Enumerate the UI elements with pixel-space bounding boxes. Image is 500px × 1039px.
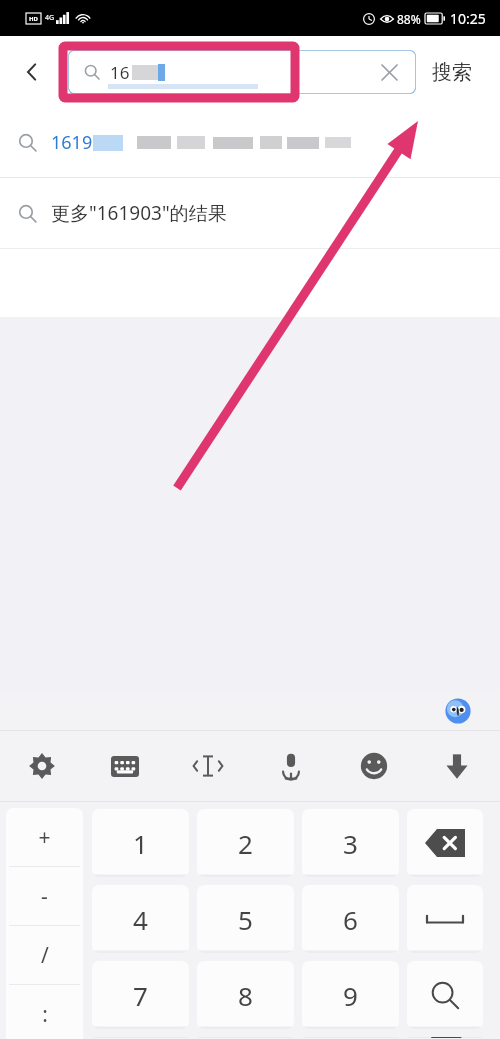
button[interactable]: 9 bbox=[302, 961, 399, 1029]
button[interactable]: 5 bbox=[197, 885, 294, 953]
staticText: + bbox=[38, 823, 51, 852]
staticText: 2 bbox=[238, 826, 253, 861]
staticText: 16 bbox=[110, 61, 130, 84]
button[interactable]: 2 bbox=[197, 809, 294, 877]
staticText: 更多"161903"的结果 bbox=[51, 200, 227, 226]
button[interactable]: 搜索 bbox=[416, 47, 488, 97]
staticText: 7 bbox=[133, 978, 148, 1013]
button[interactable]: 键盘切换 bbox=[83, 731, 166, 801]
staticText: 4G bbox=[45, 13, 55, 23]
staticText: - bbox=[41, 882, 48, 911]
button[interactable]: 4 bbox=[92, 885, 189, 953]
button[interactable]: 返回 bbox=[14, 54, 50, 90]
button[interactable]: 空格 bbox=[407, 885, 483, 953]
staticText: 3 bbox=[343, 826, 358, 861]
button[interactable]: 收起键盘 bbox=[415, 731, 498, 801]
button[interactable]: 6 bbox=[302, 885, 399, 953]
button[interactable]: : bbox=[6, 985, 83, 1039]
button[interactable]: 输入法 bbox=[444, 697, 472, 725]
staticText: HD bbox=[29, 15, 38, 23]
staticText: / bbox=[41, 941, 49, 970]
button[interactable]: 光标移动 bbox=[166, 731, 249, 801]
staticText: 8 bbox=[238, 978, 253, 1013]
button[interactable]: 清除 bbox=[372, 55, 406, 89]
staticText: 搜索 bbox=[432, 60, 472, 85]
button[interactable]: 3 bbox=[302, 809, 399, 877]
button[interactable]: 设置 bbox=[0, 731, 83, 801]
button[interactable]: 表情 bbox=[332, 731, 415, 801]
button[interactable]: 更多"161903"的结果 bbox=[0, 178, 500, 248]
staticText: 1619 bbox=[51, 130, 93, 155]
button[interactable]: / bbox=[6, 926, 83, 984]
button[interactable]: 语音输入 bbox=[249, 731, 332, 801]
button[interactable]: 7 bbox=[92, 961, 189, 1029]
button[interactable]: 删除 bbox=[407, 809, 483, 877]
staticText: 5 bbox=[238, 902, 253, 937]
staticText: 10:25 bbox=[450, 9, 486, 28]
staticText: : bbox=[42, 1000, 48, 1029]
button[interactable]: 16 bbox=[68, 50, 416, 94]
button[interactable]: 1619 bbox=[0, 108, 500, 177]
button[interactable]: 换行 bbox=[407, 1037, 483, 1038]
staticText: 88% bbox=[397, 11, 421, 27]
button[interactable]: - bbox=[6, 867, 83, 925]
staticText: 6 bbox=[343, 902, 358, 937]
staticText: 4 bbox=[133, 902, 148, 937]
staticText: 9 bbox=[343, 978, 358, 1013]
staticText: 1 bbox=[133, 826, 148, 861]
button[interactable]: 搜索 bbox=[407, 961, 483, 1029]
button[interactable]: + bbox=[6, 808, 83, 866]
button[interactable]: 1 bbox=[92, 809, 189, 877]
button[interactable]: 8 bbox=[197, 961, 294, 1029]
